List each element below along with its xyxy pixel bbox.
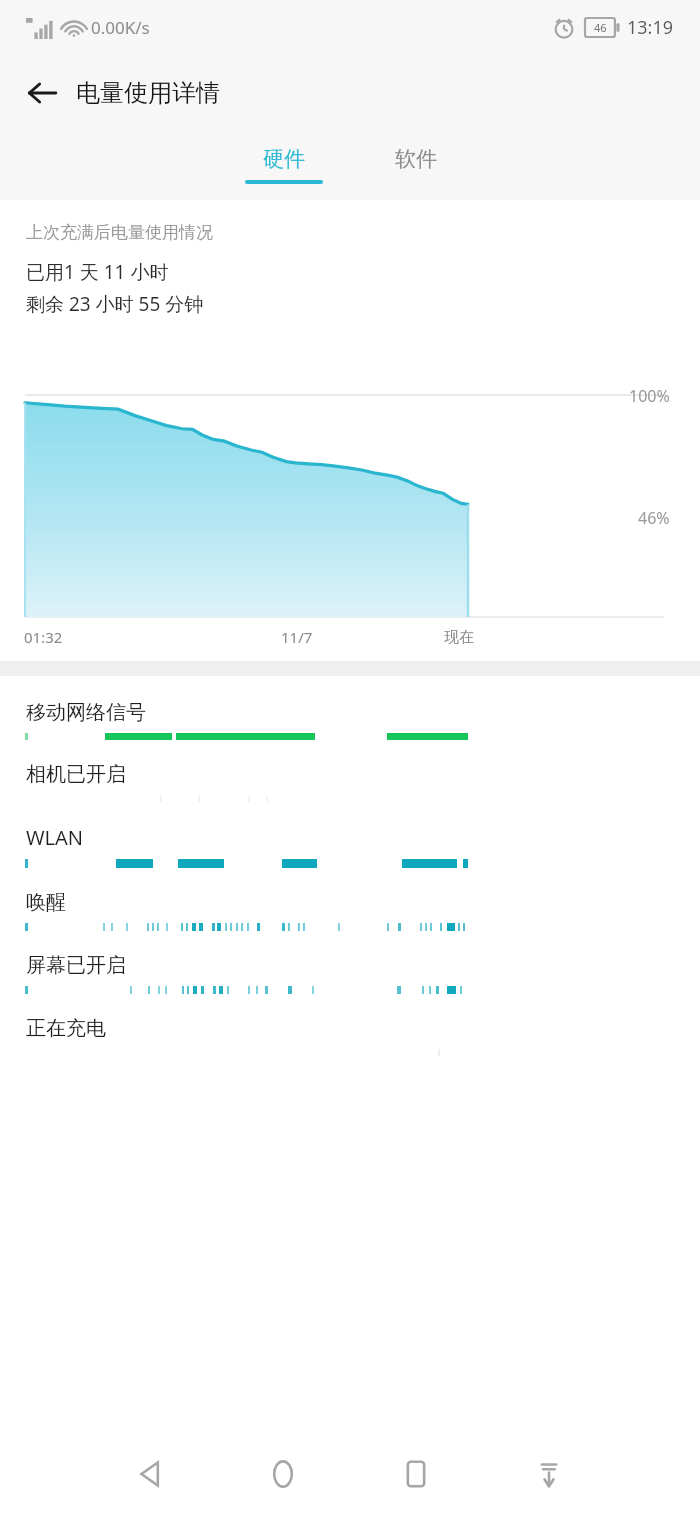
button[interactable]: 唤醒	[0, 890, 700, 953]
staticText: 电量使用详情	[76, 78, 220, 108]
staticText: 硬件	[263, 146, 305, 172]
button[interactable]: Back	[120, 1443, 182, 1505]
staticText: 相机已开启	[26, 762, 126, 787]
staticText: WLAN	[26, 824, 84, 851]
button[interactable]: WLAN	[0, 824, 700, 890]
staticText: 46%	[638, 507, 670, 529]
button[interactable]: 屏幕已开启	[0, 953, 700, 1016]
staticText: 移动网络信号	[26, 700, 146, 725]
staticText: 11/7	[281, 627, 313, 647]
staticText: 已用1 天 11 小时	[26, 259, 169, 285]
staticText: 剩余 23 小时 55 分钟	[26, 291, 204, 317]
button[interactable]: Pull down notifications	[518, 1443, 580, 1505]
button[interactable]: 正在充电	[0, 1016, 700, 1078]
staticText: 13:19	[627, 15, 674, 40]
staticText: 上次充满后电量使用情况	[26, 222, 213, 243]
staticText: 现在	[444, 628, 474, 647]
staticText: 屏幕已开启	[26, 953, 126, 978]
button[interactable]: 软件	[363, 140, 469, 190]
button[interactable]: 相机已开启	[0, 762, 700, 824]
staticText: 正在充电	[26, 1016, 106, 1041]
button[interactable]: Home	[252, 1443, 314, 1505]
staticText: 唤醒	[26, 890, 66, 915]
staticText: 100%	[629, 385, 670, 407]
button[interactable]: 移动网络信号	[0, 700, 700, 762]
staticText: 0.00K/s	[91, 16, 150, 39]
staticText: 软件	[395, 146, 437, 172]
staticText: 01:32	[24, 627, 63, 647]
button[interactable]: 硬件	[231, 140, 337, 190]
staticText: 46	[594, 20, 607, 35]
button[interactable]: Recents	[385, 1443, 447, 1505]
button[interactable]: Back	[14, 65, 70, 121]
